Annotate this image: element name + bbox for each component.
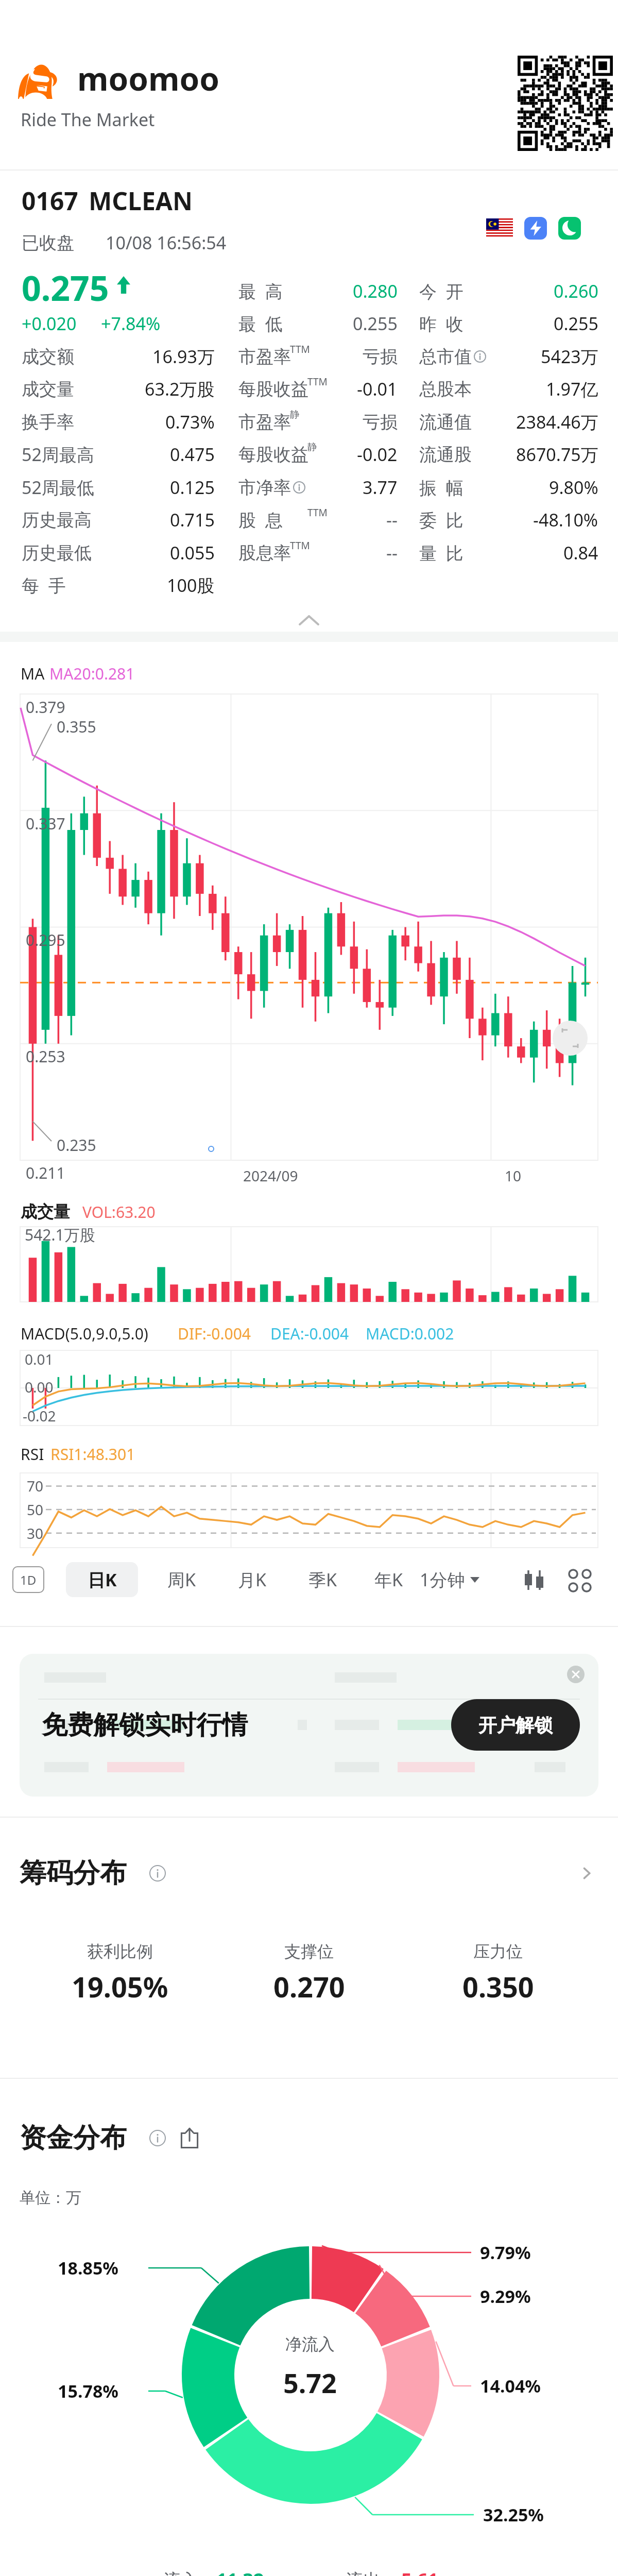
staticText: 历史最低: [22, 542, 92, 564]
button[interactable]: 月K: [224, 1562, 281, 1597]
staticText: 19.05%: [72, 1968, 168, 2006]
staticText: 0.270: [273, 1968, 345, 2006]
button[interactable]: Indicators: [564, 1562, 597, 1597]
button[interactable]: 开户解锁: [451, 1699, 580, 1751]
staticText: 0.295: [26, 929, 65, 951]
staticText: 流通值: [419, 411, 472, 433]
button[interactable]: 1分钟: [420, 1562, 502, 1597]
staticText: 0167: [22, 184, 78, 217]
staticText: 振 幅: [419, 476, 463, 499]
button[interactable]: Share fund distribution: [179, 2125, 206, 2151]
button[interactable]: Level-2 quotes: [524, 217, 547, 240]
staticText: 1D: [20, 1571, 37, 1588]
staticText: 0.260: [554, 279, 598, 303]
staticText: DEA:-0.004: [270, 1323, 349, 1344]
staticText: 30: [27, 1523, 44, 1543]
staticText: 0.055: [170, 541, 215, 565]
staticText: 年K: [374, 1568, 403, 1591]
button[interactable]: Close banner: [561, 1660, 590, 1689]
staticText: 每 手: [22, 573, 66, 597]
staticText: 100股: [167, 573, 215, 597]
staticText: 18.85%: [58, 2256, 119, 2280]
staticText: 总股本: [419, 378, 472, 400]
staticText: 压力位: [473, 1941, 523, 1962]
staticText: 亏损: [363, 411, 398, 433]
staticText: 市盈率: [238, 346, 291, 368]
button[interactable]: [0, 1817, 618, 2008]
staticText: moomoo: [77, 57, 219, 100]
staticText: MCLEAN: [89, 184, 193, 217]
staticText: -0.01: [357, 377, 398, 401]
staticText: --: [386, 541, 398, 565]
staticText: 0.253: [26, 1046, 65, 1067]
staticText: 已收盘: [22, 232, 74, 254]
staticText: 542.1万股: [25, 1224, 95, 1245]
staticText: 今 开: [419, 279, 463, 303]
staticText: 52周最低: [22, 476, 94, 499]
staticText: 股 息: [238, 508, 283, 532]
button[interactable]: 日K: [66, 1562, 138, 1597]
staticText: 9.79%: [480, 2241, 531, 2264]
staticText: 净流入: [285, 2334, 335, 2354]
staticText: TTM: [290, 539, 310, 552]
staticText: 成交量: [22, 378, 74, 400]
staticText: TTM: [290, 343, 310, 356]
staticText: 静: [307, 441, 317, 453]
staticText: 支撑位: [284, 1941, 334, 1962]
staticText: 日K: [88, 1568, 117, 1591]
staticText: 市净率: [238, 477, 291, 499]
staticText: RSI1:48.301: [50, 1444, 135, 1465]
staticText: 0.379: [26, 697, 65, 718]
staticText: 0.337: [26, 813, 65, 834]
staticText: 10: [505, 1166, 522, 1185]
staticText: 月K: [238, 1568, 267, 1591]
staticText: 0.73%: [165, 410, 215, 434]
staticText: 0.84: [563, 541, 598, 565]
staticText: 14.04%: [480, 2374, 541, 2398]
staticText: RSI: [21, 1444, 44, 1465]
staticText: 0.211: [26, 1162, 65, 1183]
button[interactable]: Night trading: [558, 217, 581, 240]
staticText: 0.125: [170, 476, 215, 499]
staticText: 8670.75万: [516, 443, 598, 466]
button[interactable]: Fullscreen chart: [552, 1020, 588, 1056]
staticText: 换手率: [22, 411, 74, 433]
button[interactable]: 年K: [360, 1562, 417, 1597]
staticText: 总市值: [419, 346, 472, 368]
staticText: -0.02: [357, 443, 398, 466]
staticText: 9.80%: [549, 476, 598, 499]
staticText: 0.01: [25, 1349, 54, 1369]
button[interactable]: [20, 1654, 598, 1797]
staticText: 股息率: [238, 542, 291, 564]
staticText: 每股收益: [238, 444, 308, 466]
staticText: 筹码分布: [20, 1856, 127, 1890]
staticText: 单位：万: [20, 2188, 81, 2208]
staticText: 亏损: [363, 346, 398, 368]
button[interactable]: Chart style: [518, 1562, 551, 1597]
staticText: 静: [290, 409, 300, 421]
button[interactable]: 周K: [153, 1562, 210, 1597]
staticText: MA: [21, 663, 45, 684]
staticText: 0.255: [353, 312, 398, 335]
staticText: 0.275: [22, 264, 109, 311]
staticText: Ride The Market: [21, 108, 155, 131]
staticText: TTM: [307, 375, 328, 388]
staticText: 0.475: [170, 443, 215, 466]
staticText: DIF:-0.004: [178, 1323, 251, 1344]
button[interactable]: Collapse details: [268, 603, 350, 632]
staticText: MA20:0.281: [49, 663, 135, 684]
staticText: 历史最高: [22, 509, 92, 531]
staticText: MACD:0.002: [366, 1323, 454, 1344]
staticText: 63.2万股: [145, 377, 215, 401]
staticText: TTM: [307, 506, 328, 519]
staticText: MACD(5.0,9.0,5.0): [21, 1323, 148, 1344]
staticText: 16.93万: [152, 345, 215, 368]
button[interactable]: 1D: [12, 1566, 44, 1593]
staticText: -0.02: [23, 1406, 56, 1426]
staticText: 50: [27, 1500, 44, 1519]
button[interactable]: 季K: [295, 1562, 351, 1597]
staticText: 流出:: [346, 2568, 390, 2576]
staticText: 9.29%: [480, 2284, 531, 2308]
staticText: 0.350: [462, 1968, 534, 2006]
staticText: 免费解锁实时行情: [42, 1709, 248, 1741]
